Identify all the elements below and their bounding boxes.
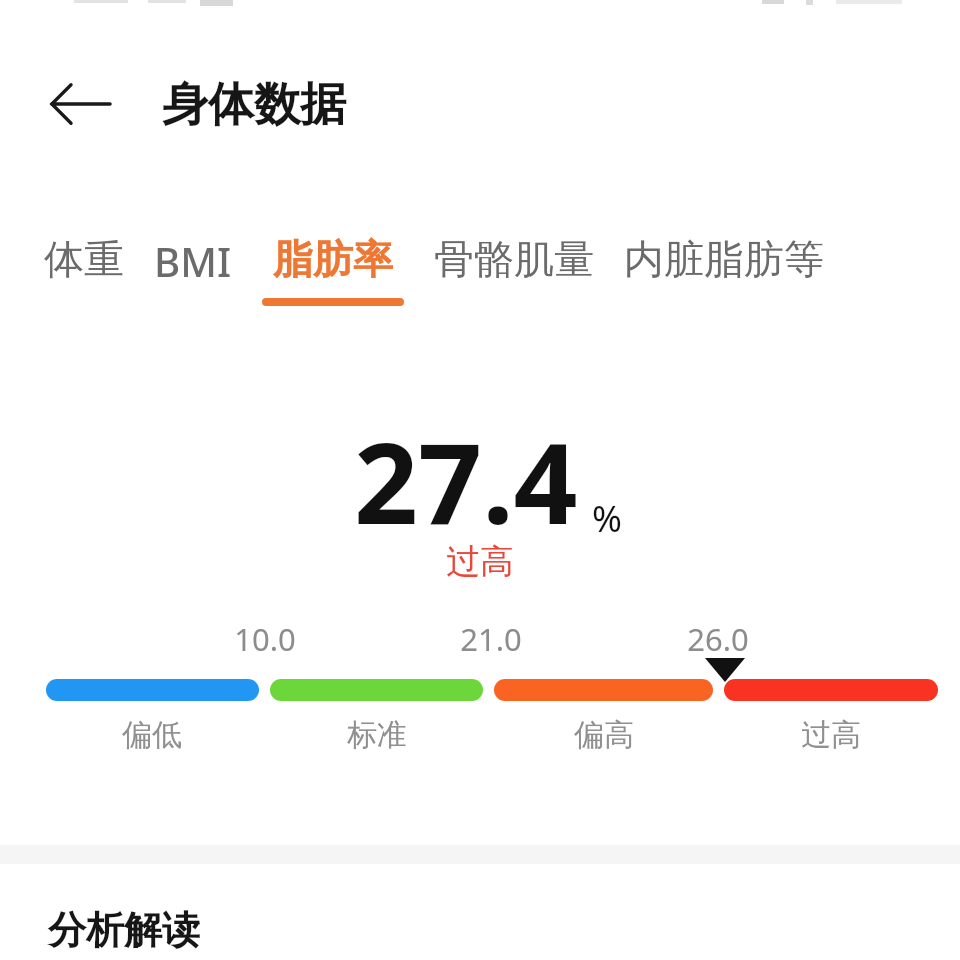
staticText: 分析解读 [48, 906, 200, 954]
staticText: 骨骼肌量 [434, 234, 594, 284]
button[interactable]: 体重 [44, 234, 124, 306]
button[interactable]: 骨骼肌量 [434, 234, 594, 306]
button[interactable]: 脂肪率 [262, 234, 404, 306]
staticText: 21.0 [421, 618, 561, 660]
staticText: BMI [154, 234, 232, 288]
staticText: 偏低 [82, 716, 222, 754]
staticText: 脂肪率 [273, 234, 393, 284]
button[interactable]: 内脏脂肪等 [624, 234, 824, 306]
staticText: 内脏脂肪等 [624, 234, 824, 284]
staticText: 标准 [307, 716, 447, 754]
staticText: 10.0 [195, 618, 335, 660]
staticText: 身体数据 [162, 76, 346, 134]
staticText: 过高 [761, 716, 901, 754]
staticText: 过高 [446, 540, 514, 583]
staticText: 体重 [44, 234, 124, 284]
button[interactable]: Back [34, 58, 126, 150]
staticText: 26.0 [648, 618, 788, 660]
button[interactable]: BMI [154, 234, 232, 310]
staticText: % [592, 494, 622, 543]
staticText: 27.4 [354, 404, 578, 557]
staticText: 偏高 [534, 716, 674, 754]
